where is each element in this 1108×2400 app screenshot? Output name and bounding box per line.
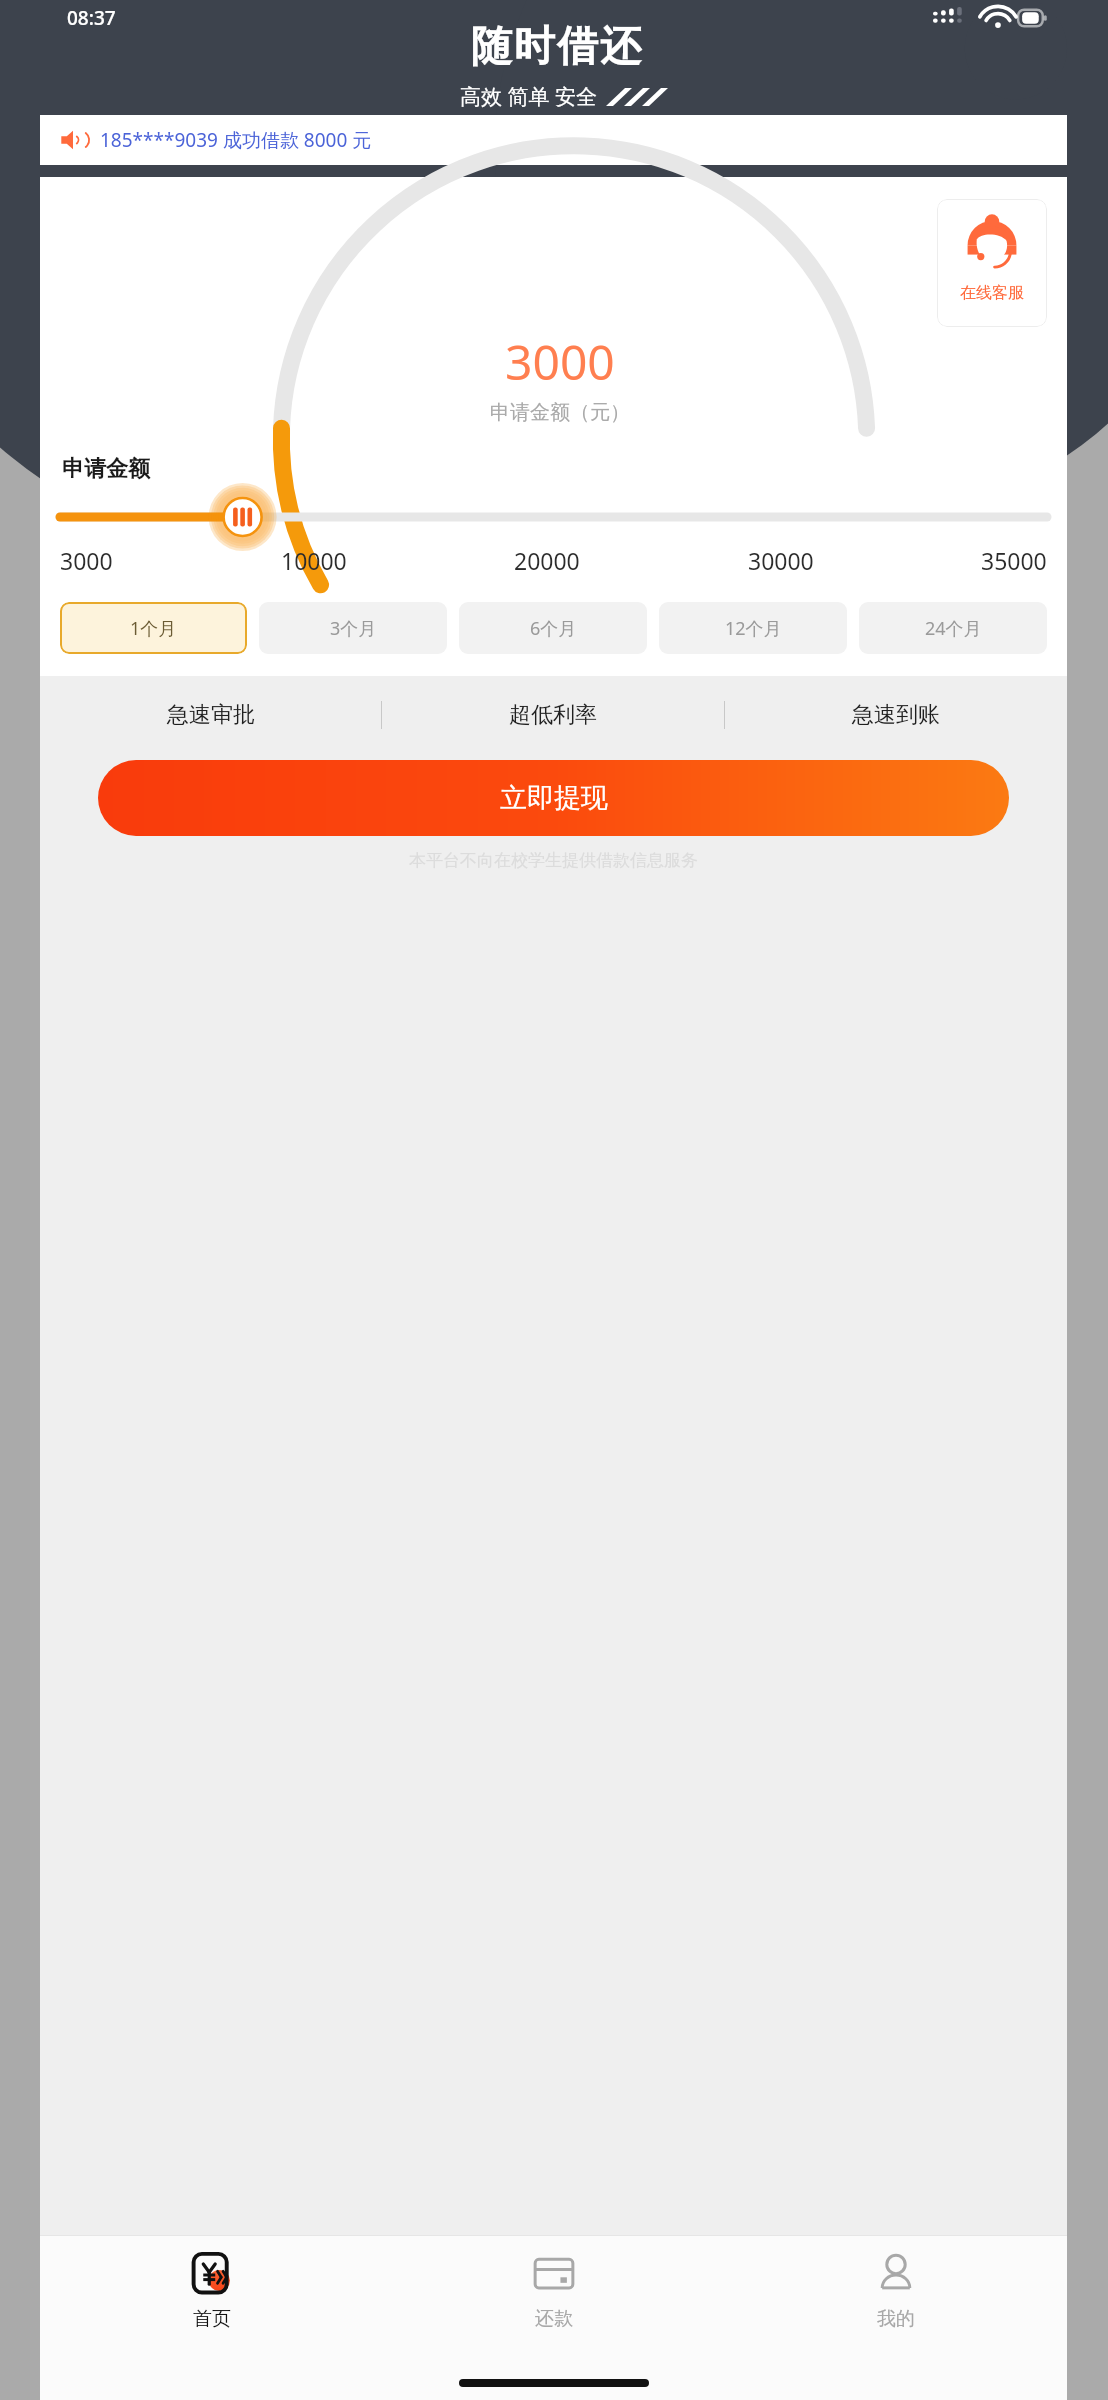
staticText: 申请金额（元） [490, 400, 630, 425]
staticText: 我的 [877, 2307, 915, 2331]
button[interactable]: 12个月 [659, 602, 847, 654]
staticText: 20000 [514, 545, 580, 576]
staticText: 08:37 [67, 5, 116, 31]
button[interactable]: 1个月 [60, 602, 247, 654]
staticText: 24个月 [925, 616, 982, 641]
staticText: 急速到账 [852, 701, 940, 729]
button[interactable]: 我的 [725, 2236, 1067, 2366]
staticText: 急速审批 [167, 701, 255, 729]
staticText: 35000 [981, 545, 1047, 576]
staticText: 12个月 [725, 616, 782, 641]
staticText: 10000 [281, 545, 347, 576]
staticText: 首页 [193, 2307, 231, 2331]
staticText: 高效 简单 安全 [460, 82, 597, 111]
staticText: 在线客服 [960, 283, 1024, 303]
button[interactable]: 首页 [40, 2236, 383, 2366]
button[interactable]: 185****9039 成功借款 8000 元 [40, 115, 1067, 165]
button[interactable]: 还款 [383, 2236, 725, 2366]
staticText: 30000 [748, 545, 814, 576]
button[interactable]: 6个月 [459, 602, 647, 654]
staticText: 本平台不向在校学生提供借款信息服务 [40, 850, 1067, 871]
staticText: 随时借还 [470, 21, 642, 73]
staticText: 立即提现 [500, 781, 608, 815]
staticText: 185****9039 成功借款 8000 元 [100, 127, 372, 153]
staticText: 6个月 [530, 616, 577, 641]
staticText: 申请金额 [62, 455, 150, 483]
staticText: 还款 [535, 2307, 573, 2331]
button[interactable]: 立即提现 [98, 760, 1009, 836]
staticText: 3000 [505, 329, 615, 394]
button[interactable]: 在线客服 [937, 199, 1047, 327]
staticText: 超低利率 [509, 701, 597, 729]
staticText: 3000 [60, 545, 113, 576]
staticText: 1个月 [130, 616, 177, 641]
button[interactable]: 24个月 [859, 602, 1047, 654]
staticText: 3个月 [330, 616, 377, 641]
button[interactable]: 3个月 [259, 602, 447, 654]
